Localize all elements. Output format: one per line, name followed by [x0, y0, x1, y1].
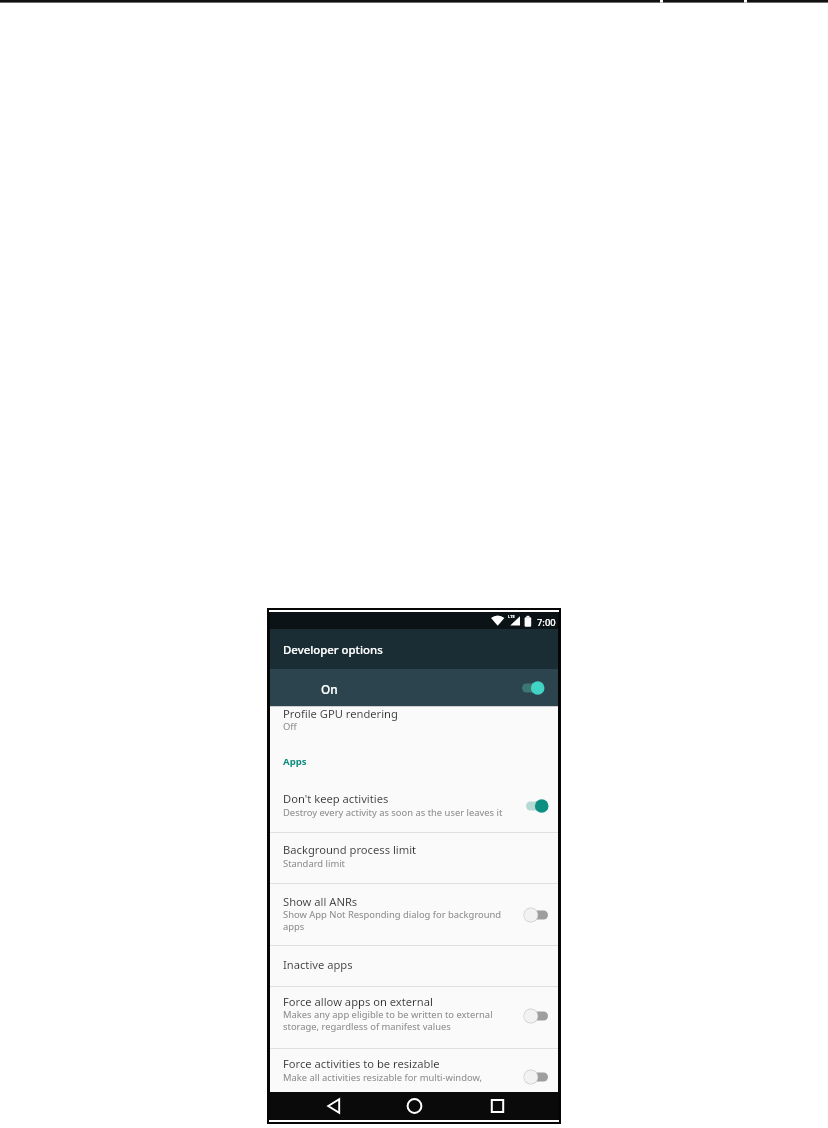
button[interactable]	[270, 946, 558, 986]
staticText: Force allow apps on external	[283, 994, 433, 1009]
button[interactable]	[270, 776, 558, 832]
staticText: storage, regardless of manifest values	[283, 1020, 451, 1033]
button[interactable]	[523, 1008, 551, 1024]
button[interactable]	[519, 680, 547, 696]
staticText: Don't keep activities	[283, 791, 389, 806]
button[interactable]: Profile GPU rendering	[270, 706, 558, 745]
staticText: Show all ANRs	[283, 894, 358, 909]
button[interactable]	[270, 833, 558, 883]
button[interactable]	[326, 1098, 343, 1114]
staticText: Developer options	[283, 642, 383, 658]
staticText: Off	[283, 720, 297, 733]
button[interactable]	[270, 987, 558, 1048]
staticText: Make all activities resizable for multi-…	[283, 1071, 482, 1084]
staticText: On	[321, 681, 338, 697]
staticText: Show App Not Responding dialog for backg…	[283, 908, 502, 921]
button[interactable]	[270, 1049, 558, 1092]
staticText: Force activities to be resizable	[283, 1056, 440, 1071]
button[interactable]	[523, 907, 551, 923]
button[interactable]	[270, 884, 558, 945]
staticText: Background process limit	[283, 842, 417, 857]
staticText: Inactive apps	[283, 957, 353, 972]
staticText: LTE	[508, 614, 515, 619]
staticText: Apps	[283, 755, 307, 768]
button[interactable]	[523, 1069, 551, 1085]
button[interactable]	[406, 1098, 423, 1114]
staticText: Makes any app eligible to be written to …	[283, 1008, 493, 1021]
button[interactable]	[523, 798, 551, 814]
staticText: Profile GPU rendering	[283, 706, 398, 721]
button[interactable]	[489, 1098, 506, 1114]
staticText: 7:00	[537, 616, 556, 629]
staticText: apps	[283, 920, 305, 933]
button[interactable]: On	[270, 669, 558, 706]
staticText: Destroy every activity as soon as the us…	[283, 806, 503, 819]
staticText: Standard limit	[283, 857, 346, 870]
